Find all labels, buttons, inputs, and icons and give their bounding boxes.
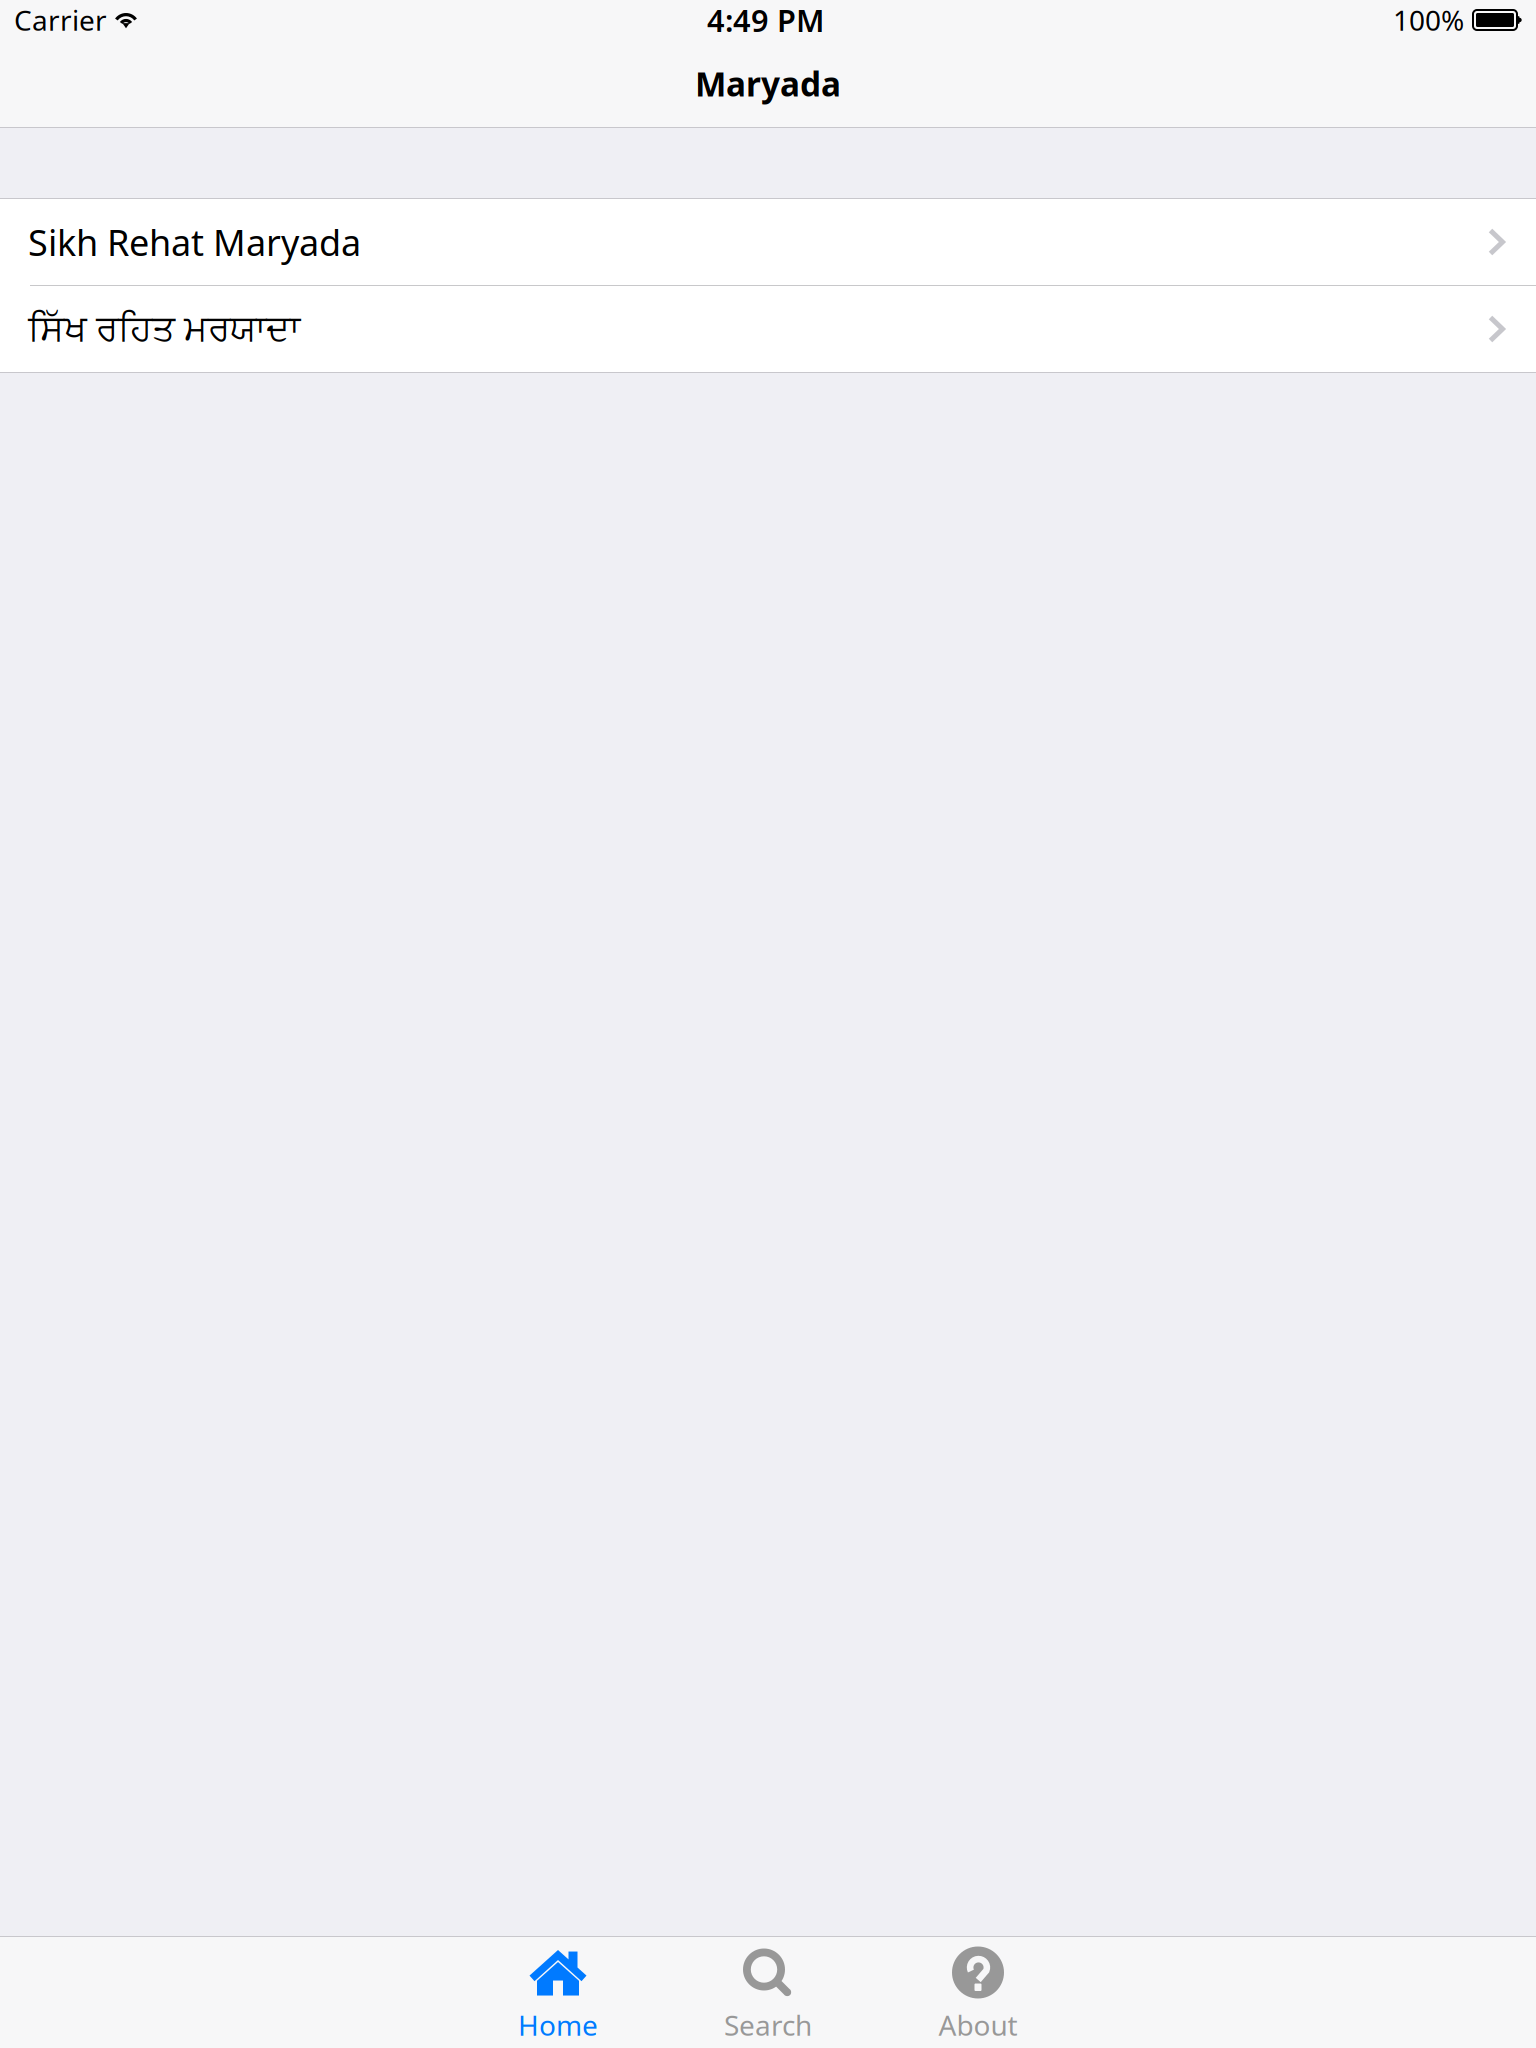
staticText: ਸਿੱਖ ਰਹਿਤ ਮਰਯਾਦਾ bbox=[28, 311, 300, 346]
button[interactable]: Sikh Rehat Maryada bbox=[0, 199, 1536, 286]
staticText: Home bbox=[518, 2006, 598, 2044]
staticText: Maryada bbox=[695, 61, 841, 106]
button[interactable]: Search bbox=[663, 1937, 873, 2048]
staticText: 100% bbox=[1393, 1, 1464, 39]
button[interactable]: ਸਿੱਖ ਰਹਿਤ ਮਰਯਾਦਾ bbox=[0, 286, 1536, 373]
staticText: Search bbox=[724, 2006, 812, 2044]
button[interactable]: About bbox=[873, 1937, 1083, 2048]
staticText: Sikh Rehat Maryada bbox=[28, 218, 361, 266]
button[interactable]: Home bbox=[453, 1937, 663, 2048]
staticText: 4:49 PM bbox=[707, 0, 824, 40]
staticText: About bbox=[938, 2006, 1017, 2044]
staticText: Carrier bbox=[14, 1, 107, 39]
